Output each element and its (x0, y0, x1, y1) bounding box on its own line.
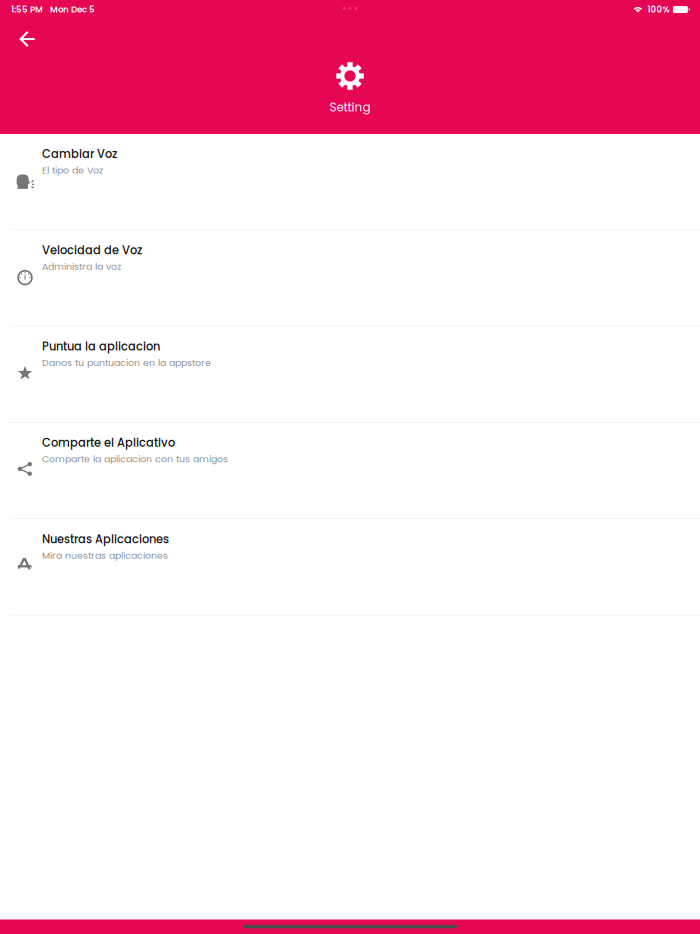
button[interactable]: Comparte el Aplicativo (0, 423, 700, 519)
staticText: Velocidad de Voz (42, 242, 142, 258)
button[interactable]: Velocidad de Voz (0, 230, 700, 327)
button[interactable]: Puntua la aplicacion (0, 327, 700, 423)
staticText: Nuestras Aplicaciones (42, 531, 169, 547)
button[interactable]: Nuestras Aplicaciones (0, 519, 700, 615)
staticText: Setting (329, 99, 370, 116)
staticText: Mira nuestras aplicaciones (42, 549, 168, 562)
staticText: Cambiar Voz (42, 146, 117, 162)
staticText: Mon Dec 5 (50, 3, 95, 15)
button[interactable]: Back (10, 24, 44, 54)
staticText: 1:55 PM (11, 3, 43, 15)
staticText: 100% (647, 3, 669, 15)
staticText: Danos tu puntuacion en la appstore (42, 356, 211, 369)
staticText: Comparte el Aplicativo (42, 435, 175, 451)
staticText: Administra la voz (42, 260, 121, 273)
staticText: Comparte la aplicacion con tus amigos (42, 452, 228, 466)
button[interactable]: Cambiar Voz (0, 134, 700, 230)
staticText: Puntua la aplicacion (42, 339, 160, 355)
staticText: El tipo de Voz (42, 163, 103, 177)
